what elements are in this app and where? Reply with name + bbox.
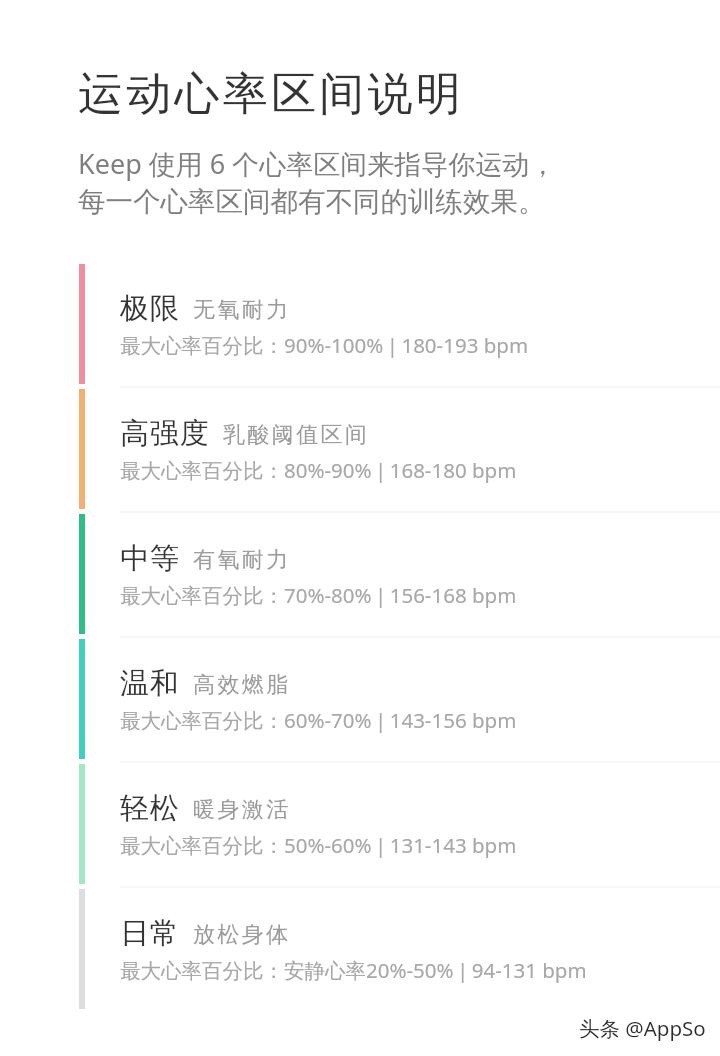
staticText: 无氧耐力 (193, 296, 291, 324)
staticText: 高强度 (120, 415, 210, 452)
staticText: 乳酸阈值区间 (223, 421, 370, 449)
button[interactable]: 日常 放松身体 (0, 889, 720, 1014)
staticText: 温和 (120, 665, 180, 702)
staticText: 头条 @AppSo (579, 1014, 706, 1042)
staticText: 最大心率百分比：90%-100% | 180-193 bpm (120, 331, 529, 359)
staticText: 最大心率百分比：安静心率20%-50% | 94-131 bpm (120, 956, 587, 984)
staticText: 极限 (120, 290, 180, 327)
staticText: 中等 (120, 540, 180, 577)
staticText: 日常 (120, 915, 180, 952)
staticText: 最大心率百分比：70%-80% | 156-168 bpm (120, 581, 517, 609)
staticText: Keep 使用 6 个心率区间来指导你运动， (78, 145, 557, 182)
button[interactable]: 中等 有氧耐力 (0, 514, 720, 639)
button[interactable]: 温和 高效燃脂 (0, 639, 720, 764)
button[interactable]: 高强度 乳酸阈值区间 (0, 389, 720, 514)
staticText: 运动心率区间说明 (78, 66, 465, 123)
staticText: 高效燃脂 (193, 671, 291, 699)
staticText: 每一个心率区间都有不同的训练效果。 (78, 185, 546, 220)
staticText: 放松身体 (193, 921, 291, 949)
staticText: 轻松 (120, 790, 180, 827)
staticText: 最大心率百分比：80%-90% | 168-180 bpm (120, 456, 517, 484)
staticText: 暖身激活 (193, 796, 291, 824)
staticText: 最大心率百分比：60%-70% | 143-156 bpm (120, 706, 517, 734)
button[interactable]: 极限 无氧耐力 (0, 264, 720, 389)
staticText: 最大心率百分比：50%-60% | 131-143 bpm (120, 831, 517, 859)
button[interactable]: 轻松 暖身激活 (0, 764, 720, 889)
staticText: 有氧耐力 (193, 546, 291, 574)
